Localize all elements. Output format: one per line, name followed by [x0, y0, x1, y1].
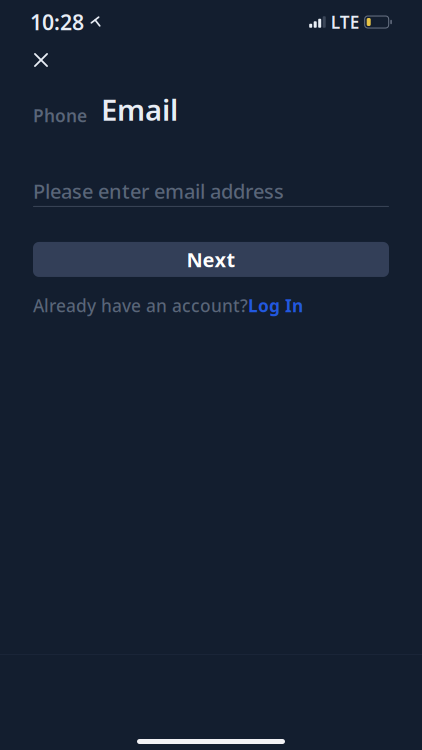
button[interactable]: Phone [33, 104, 87, 129]
staticText: Next [186, 246, 235, 273]
staticText: Log In [248, 294, 303, 317]
staticText: Please enter email address [33, 178, 284, 204]
staticText: Already have an account? [33, 294, 248, 317]
button[interactable]: Next [33, 242, 389, 277]
staticText: Email [101, 90, 178, 129]
button[interactable]: Log In [248, 294, 303, 317]
staticText: LTE [331, 10, 360, 33]
button[interactable]: Email [101, 90, 178, 129]
button[interactable]: Close [21, 40, 61, 80]
staticText: Phone [33, 104, 87, 127]
staticText: 10:28 [30, 8, 84, 36]
